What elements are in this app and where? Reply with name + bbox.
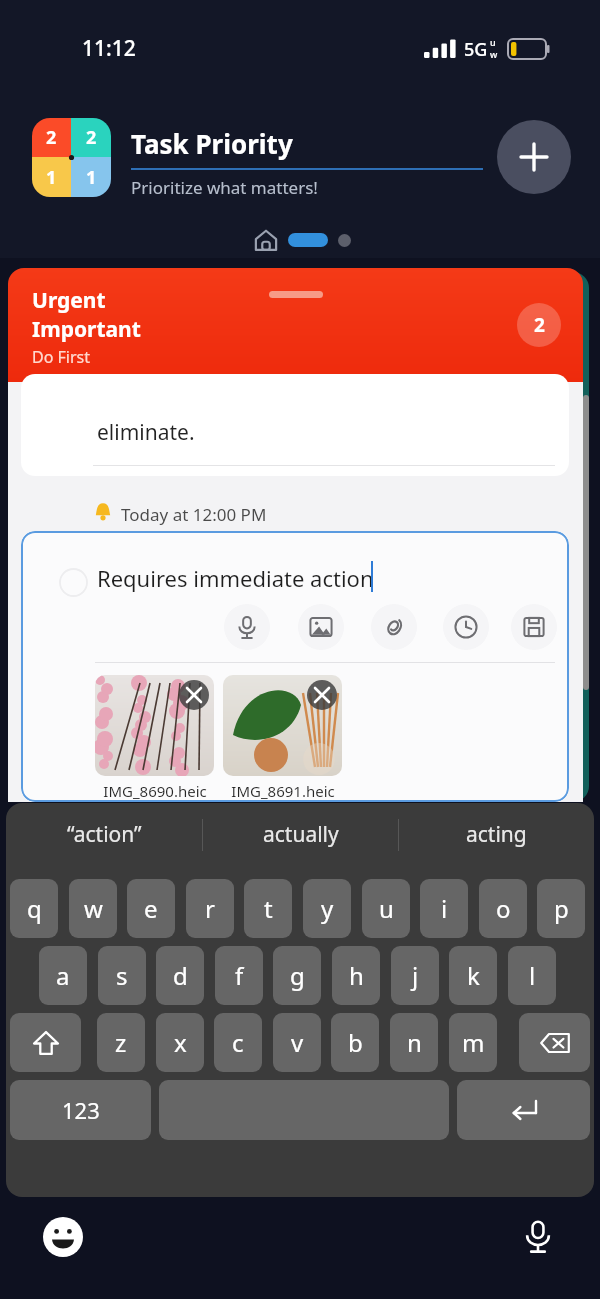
button[interactable]: Remove attachment xyxy=(307,680,337,710)
button[interactable]: Set reminder xyxy=(443,604,489,650)
staticText: g xyxy=(290,959,305,992)
staticText: k xyxy=(467,959,480,992)
button[interactable]: Urgent xyxy=(8,268,583,382)
staticText: b xyxy=(348,1026,363,1059)
button[interactable]: u xyxy=(362,879,410,938)
button[interactable]: eliminate. xyxy=(21,374,569,476)
button[interactable]: i xyxy=(420,879,468,938)
button[interactable]: Add task xyxy=(497,120,571,194)
button[interactable]: 123 xyxy=(10,1080,151,1140)
button[interactable]: Attach file xyxy=(371,604,417,650)
staticText: a xyxy=(56,959,70,992)
button[interactable]: h xyxy=(332,946,380,1005)
button[interactable]: l xyxy=(508,946,556,1005)
staticText: y xyxy=(321,892,334,925)
button[interactable]: Save xyxy=(511,604,557,650)
staticText: u xyxy=(379,892,394,925)
button[interactable]: w xyxy=(69,879,117,938)
staticText: 2 xyxy=(534,312,545,338)
staticText: w xyxy=(490,48,498,60)
button[interactable]: k xyxy=(449,946,497,1005)
button[interactable]: q xyxy=(10,879,58,938)
staticText: d xyxy=(173,959,188,992)
staticText: i xyxy=(441,892,448,925)
staticText: actually xyxy=(263,820,339,849)
staticText: o xyxy=(496,892,511,925)
staticText: 5G xyxy=(464,37,488,62)
button[interactable]: v xyxy=(273,1013,321,1072)
button[interactable]: a xyxy=(39,946,87,1005)
button[interactable]: acting xyxy=(399,803,594,866)
button[interactable]: c xyxy=(214,1013,262,1072)
staticText: n xyxy=(407,1026,422,1059)
staticText: 123 xyxy=(62,1095,100,1125)
button[interactable]: Voice input xyxy=(224,604,270,650)
button[interactable]: f xyxy=(215,946,263,1005)
button[interactable]: o xyxy=(479,879,527,938)
staticText: Requires immediate action xyxy=(97,563,374,593)
button[interactable]: z xyxy=(97,1013,145,1072)
button[interactable]: n xyxy=(390,1013,438,1072)
button[interactable]: j xyxy=(391,946,439,1005)
button[interactable] xyxy=(338,234,351,247)
button[interactable]: g xyxy=(273,946,321,1005)
staticText: m xyxy=(462,1026,485,1059)
button[interactable]: m xyxy=(449,1013,497,1072)
staticText: p xyxy=(554,892,569,925)
staticText: IMG_8691.heic xyxy=(231,781,335,801)
button[interactable]: Remove attachment xyxy=(95,675,214,776)
button[interactable]: Add image xyxy=(298,604,344,650)
button[interactable]: Home xyxy=(252,226,280,254)
button[interactable]: d xyxy=(156,946,204,1005)
staticText: q xyxy=(27,892,42,925)
staticText: 1 xyxy=(86,165,97,190)
staticText: eliminate. xyxy=(97,418,195,447)
staticText: v xyxy=(291,1026,304,1059)
button[interactable]: x xyxy=(156,1013,204,1072)
staticText: Important xyxy=(32,315,141,344)
button[interactable]: y xyxy=(303,879,351,938)
staticText: Prioritize what matters! xyxy=(131,176,318,199)
staticText: “action” xyxy=(67,820,142,849)
button[interactable]: Emoji xyxy=(40,1214,86,1260)
staticText: x xyxy=(174,1026,187,1059)
button[interactable]: b xyxy=(331,1013,379,1072)
button[interactable]: “action” xyxy=(6,803,202,866)
button[interactable]: p xyxy=(537,879,585,938)
staticText: h xyxy=(349,959,364,992)
button[interactable]: Remove attachment xyxy=(179,680,209,710)
button[interactable]: 2 xyxy=(32,118,111,197)
staticText: c xyxy=(232,1026,244,1059)
button[interactable]: e xyxy=(127,879,175,938)
staticText: r xyxy=(205,892,215,925)
staticText: 11:12 xyxy=(82,34,136,63)
staticText: e xyxy=(144,892,158,925)
staticText: w xyxy=(84,892,103,925)
staticText: Today at 12:00 PM xyxy=(121,503,267,526)
staticText: u xyxy=(490,36,496,48)
staticText: 1 xyxy=(46,165,57,190)
staticText: s xyxy=(116,959,128,992)
button[interactable]: Remove attachment xyxy=(223,675,342,776)
button[interactable]: r xyxy=(186,879,234,938)
staticText: 2 xyxy=(46,125,57,150)
button[interactable]: Backspace xyxy=(519,1013,590,1072)
button[interactable]: Shift xyxy=(10,1013,81,1072)
staticText: Do First xyxy=(32,346,91,368)
button[interactable]: Voice typing xyxy=(514,1212,562,1260)
staticText: f xyxy=(235,959,244,992)
staticText: 2 xyxy=(86,125,97,150)
button[interactable]: s xyxy=(98,946,146,1005)
button[interactable]: t xyxy=(244,879,292,938)
staticText: z xyxy=(115,1026,127,1059)
button[interactable] xyxy=(288,233,328,247)
staticText: Task Priority xyxy=(131,126,293,161)
staticText: j xyxy=(412,959,419,992)
button[interactable]: Return xyxy=(457,1080,590,1140)
staticText: t xyxy=(264,892,273,925)
button[interactable]: actually xyxy=(203,803,398,866)
staticText: l xyxy=(529,959,536,992)
